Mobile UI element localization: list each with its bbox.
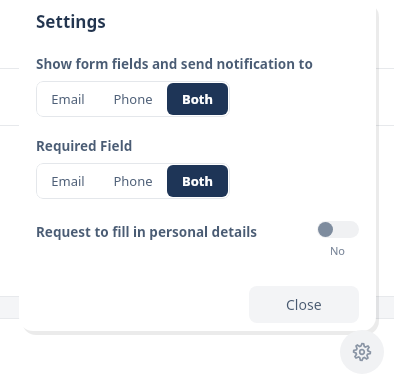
staticText: No xyxy=(330,243,346,258)
button[interactable]: Phone xyxy=(100,81,165,117)
staticText: Both xyxy=(182,90,213,108)
staticText: Close xyxy=(286,295,322,314)
staticText: Phone xyxy=(113,90,153,108)
button[interactable]: Email xyxy=(36,163,100,199)
staticText: Request to fill in personal details xyxy=(36,223,257,241)
staticText: Email xyxy=(51,90,85,108)
button[interactable]: Email xyxy=(36,81,100,117)
button[interactable]: Request personal details toggle xyxy=(317,221,359,238)
button[interactable]: Close xyxy=(249,286,359,323)
button[interactable]: Phone xyxy=(100,163,165,199)
button[interactable]: Settings xyxy=(340,330,384,374)
staticText: Both xyxy=(182,172,213,190)
staticText: Required Field xyxy=(36,137,133,155)
staticText: Settings xyxy=(36,10,106,33)
button[interactable]: Both xyxy=(167,165,228,197)
staticText: Email xyxy=(51,172,85,190)
staticText: Phone xyxy=(113,172,153,190)
staticText: Show form fields and send notification t… xyxy=(36,55,313,73)
button[interactable]: Both xyxy=(167,83,228,115)
